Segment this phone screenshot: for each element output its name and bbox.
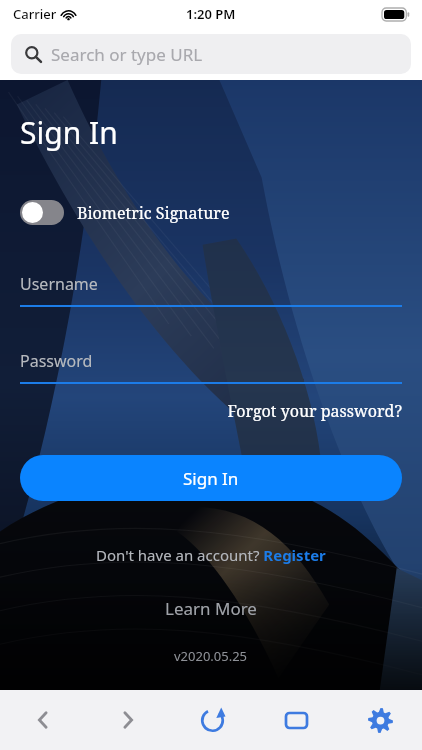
button[interactable]: Don't have an account? Register [20,545,402,565]
button[interactable]: Tabs [254,690,338,750]
button[interactable]: Forgot your password? [20,400,402,422]
button[interactable]: Reload [170,690,254,750]
staticText: Learn More [165,597,257,620]
staticText: 1:20 PM [186,5,236,23]
staticText: Sign In [183,467,239,490]
staticText: Search or type URL [51,43,203,66]
button[interactable]: Biometric Signature [20,200,230,225]
staticText: Don't have an account? Register [96,545,326,565]
button[interactable]: Settings [338,690,422,750]
staticText: Biometric Signature [77,202,230,224]
staticText: Sign In [20,112,118,153]
button[interactable]: Username [20,273,402,307]
staticText: v2020.05.25 [174,647,248,665]
button[interactable]: Back [0,690,85,750]
button[interactable]: Sign In [20,455,402,501]
button[interactable]: Forward [85,690,170,750]
button[interactable]: Password [20,350,402,384]
staticText: Username [20,273,98,295]
staticText: Password [20,350,93,372]
button[interactable]: Search or type URL [11,34,411,74]
staticText: Carrier [13,5,57,23]
button[interactable]: Learn More [20,597,402,620]
